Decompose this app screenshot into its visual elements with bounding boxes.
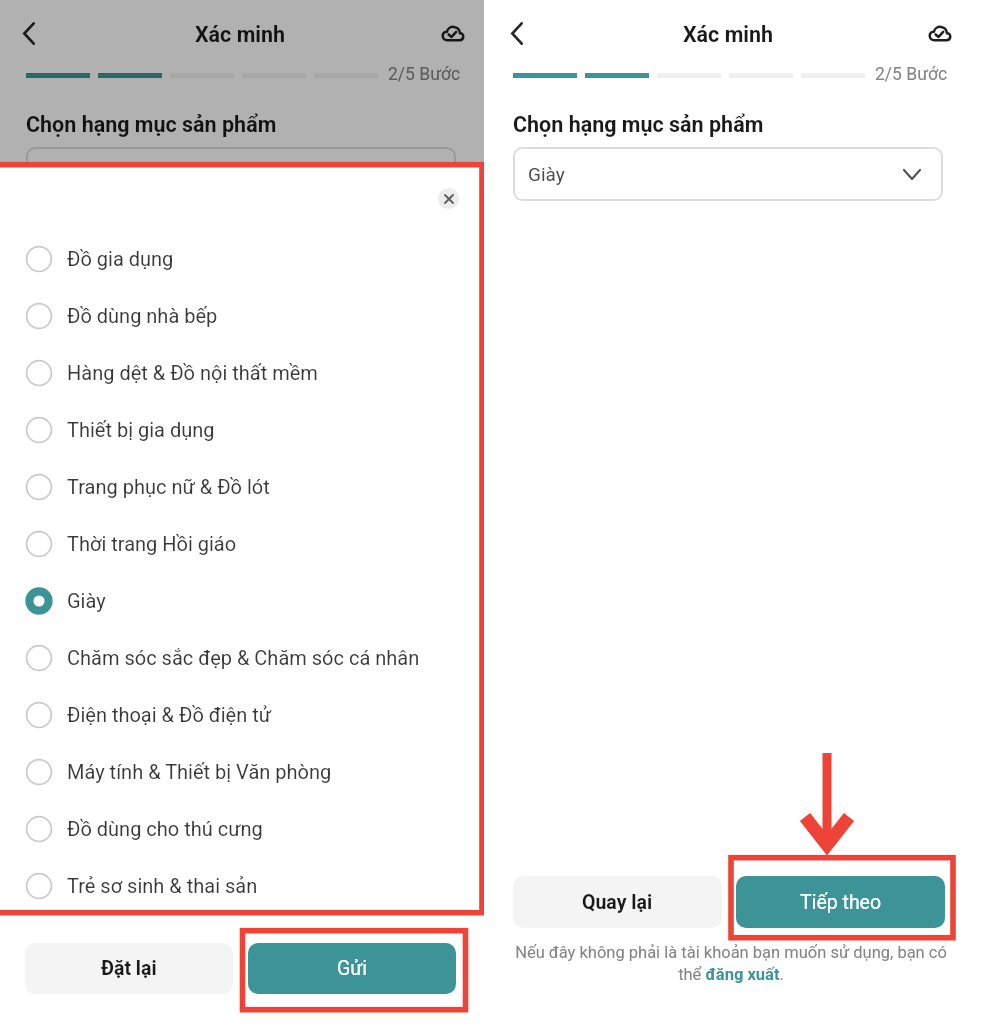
button[interactable]: Đồ gia dụng (0, 230, 484, 287)
button[interactable]: Back (7, 11, 51, 55)
button[interactable]: Máy tính & Thiết bị Văn phòng (0, 743, 484, 800)
staticText: Tiếp theo (800, 891, 882, 914)
button[interactable]: Giày (513, 147, 943, 201)
button[interactable]: Trẻ sơ sinh & thai sản (0, 857, 484, 914)
staticText: Đồ gia dụng (67, 247, 174, 270)
button[interactable]: Đồ dùng nhà bếp (0, 287, 484, 344)
staticText: Trẻ sơ sinh & thai sản (67, 874, 258, 897)
staticText: Trang phục nữ & Đồ lót (67, 475, 270, 498)
staticText: Nếu đây không phải là tài khoản bạn muốn… (505, 943, 957, 984)
button[interactable]: Close (438, 188, 459, 209)
button[interactable]: Upload (917, 11, 961, 55)
staticText: Gửi (337, 957, 368, 980)
staticText: Đồ dùng cho thú cưng (67, 817, 263, 840)
button[interactable]: Thiết bị gia dụng (0, 401, 484, 458)
button[interactable]: Điện thoại & Đồ điện tử (0, 686, 484, 743)
staticText: Giày (528, 163, 565, 185)
staticText: Chọn hạng mục sản phẩm (513, 112, 764, 137)
button[interactable]: Trang phục nữ & Đồ lót (0, 458, 484, 515)
button[interactable]: Chăm sóc sắc đẹp & Chăm sóc cá nhân (0, 629, 484, 686)
staticText: Thời trang Hồi giáo (67, 532, 237, 555)
staticText: Quay lại (582, 891, 653, 914)
button[interactable]: Thời trang Hồi giáo (0, 515, 484, 572)
button[interactable]: Giày (0, 572, 484, 629)
button[interactable]: Tiếp theo (736, 876, 945, 928)
staticText: Hàng dệt & Đồ nội thất mềm (67, 361, 318, 384)
staticText: Đặt lại (101, 957, 157, 980)
staticText: Đồ dùng nhà bếp (67, 304, 218, 327)
staticText: Điện thoại & Đồ điện tử (67, 703, 272, 726)
button[interactable]: Upload (430, 11, 474, 55)
staticText: Xác minh (578, 22, 878, 47)
staticText: Xác minh (90, 22, 390, 47)
staticText: Giày (67, 589, 106, 612)
staticText: Máy tính & Thiết bị Văn phòng (67, 760, 332, 783)
button[interactable]: Hàng dệt & Đồ nội thất mềm (0, 344, 484, 401)
button[interactable]: Đặt lại (25, 943, 233, 994)
button[interactable]: Gửi (248, 943, 456, 994)
staticText: Thiết bị gia dụng (67, 418, 215, 441)
staticText: 2/5 Bước (388, 64, 461, 85)
staticText: Chọn hạng mục sản phẩm (26, 112, 277, 137)
button[interactable]: Đồ dùng cho thú cưng (0, 800, 484, 857)
button[interactable]: Back (495, 11, 539, 55)
staticText: Chăm sóc sắc đẹp & Chăm sóc cá nhân (67, 646, 420, 669)
button[interactable]: Quay lại (513, 876, 722, 928)
staticText: 2/5 Bước (875, 64, 948, 85)
